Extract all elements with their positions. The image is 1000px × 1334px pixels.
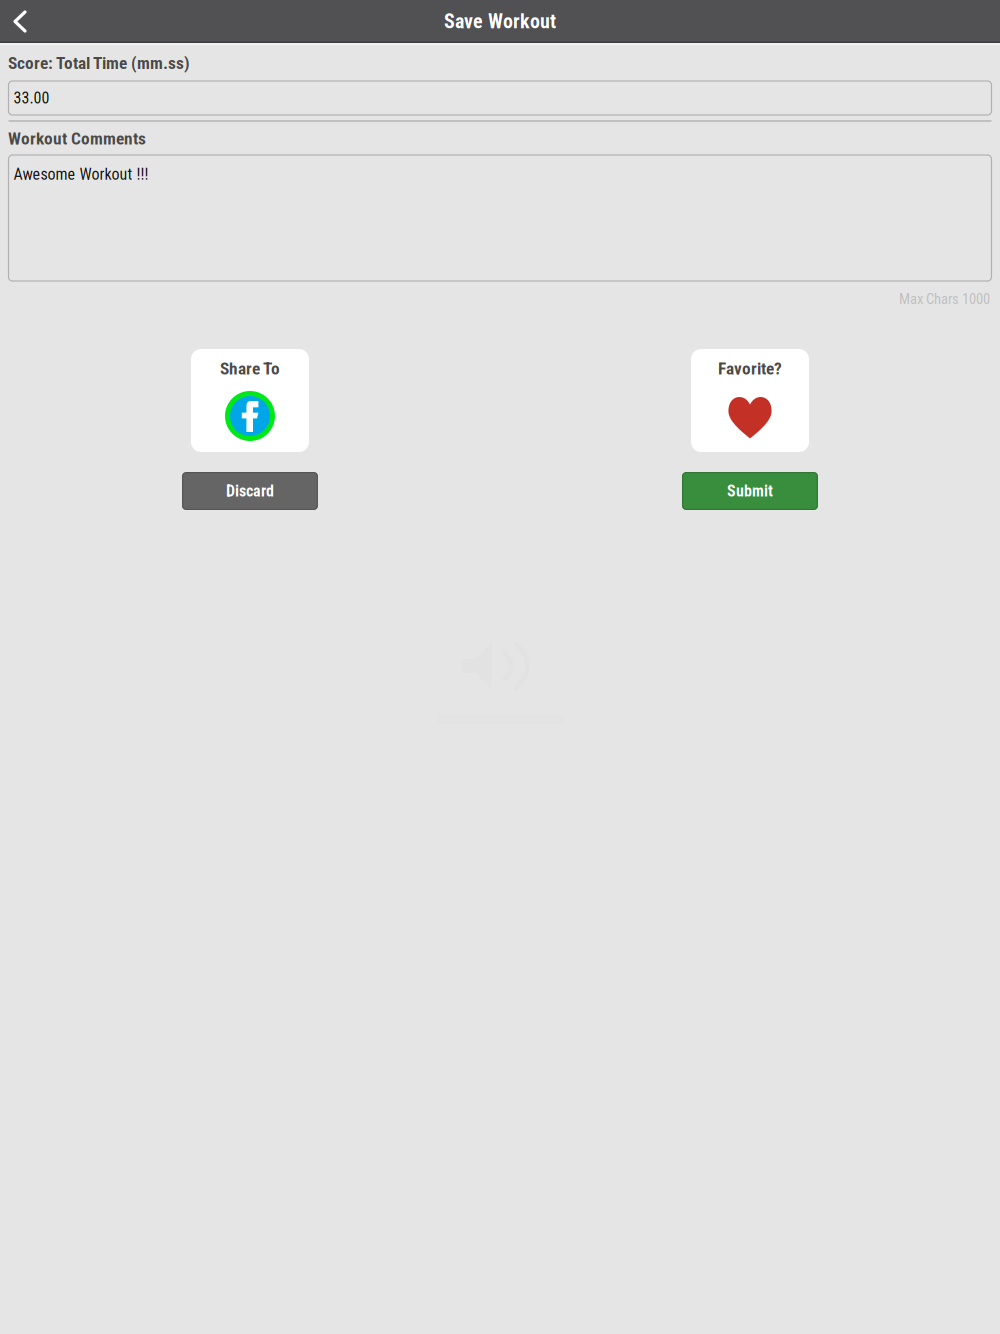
button[interactable]: Discard [182,472,318,510]
button[interactable]: Submit [682,472,818,510]
staticText: Discard [226,482,274,500]
staticText: Awesome Workout !!! [13,165,148,184]
staticText: Share To [220,358,280,379]
button[interactable]: Favorite? [691,349,809,452]
button[interactable]: Share To [191,349,309,452]
button[interactable]: Back [0,0,40,43]
staticText: Score: Total Time (mm.ss) [8,53,190,73]
staticText: Max Chars 1000 [899,290,990,308]
staticText: Favorite? [718,358,782,379]
staticText: Submit [727,482,773,500]
staticText: Save Workout [444,10,556,33]
staticText: Workout Comments [8,128,146,149]
staticText: 33.00 [13,89,49,107]
